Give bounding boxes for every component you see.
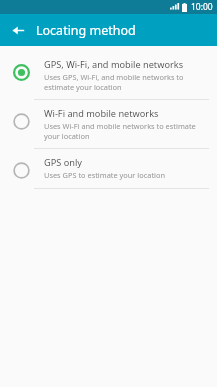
staticText: Uses GPS, Wi-Fi, and mobile networks to … <box>44 72 207 92</box>
staticText: Locating method <box>36 22 136 39</box>
button[interactable]: Wi-Fi and mobile networks <box>0 100 217 148</box>
staticText: GPS only <box>44 156 82 169</box>
staticText: Uses GPS to estimate your location <box>44 170 166 180</box>
button[interactable]: GPS, Wi-Fi, and mobile networks <box>0 51 217 99</box>
staticText: Uses Wi-Fi and mobile networks to estima… <box>44 121 207 141</box>
staticText: Wi-Fi and mobile networks <box>44 107 159 120</box>
staticText: 10:00 <box>191 1 213 13</box>
button[interactable]: GPS only <box>0 149 217 188</box>
staticText: GPS, Wi-Fi, and mobile networks <box>44 58 184 71</box>
button[interactable]: Navigate up <box>6 18 30 42</box>
